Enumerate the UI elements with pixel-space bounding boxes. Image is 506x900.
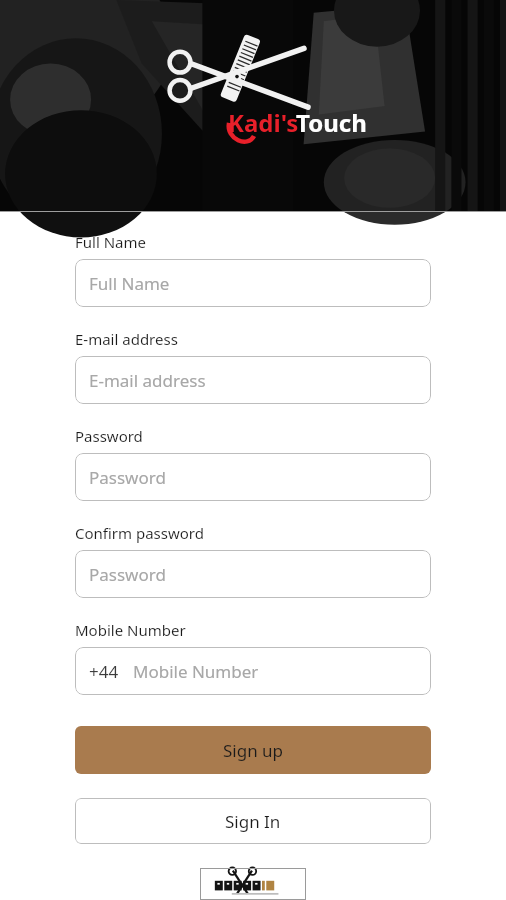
staticText: Kadi's <box>228 106 299 139</box>
staticText: Mobile Number <box>133 660 259 683</box>
button[interactable]: Barbria Elegance <box>200 868 306 900</box>
staticText: Password <box>89 563 166 586</box>
staticText: E-mail address <box>75 329 178 349</box>
staticText: Password <box>75 426 143 446</box>
staticText: E-mail address <box>89 369 206 392</box>
button[interactable]: Sign In <box>75 798 431 844</box>
button[interactable]: Password <box>75 550 431 598</box>
button[interactable]: Full Name <box>75 259 431 307</box>
button[interactable]: Password <box>75 453 431 501</box>
staticText: +44 <box>89 660 119 683</box>
staticText: Full Name <box>89 272 170 295</box>
staticText: Sign up <box>223 739 284 762</box>
button[interactable]: Sign up <box>75 726 431 774</box>
button[interactable]: E-mail address <box>75 356 431 404</box>
staticText: Touch <box>296 106 367 139</box>
staticText: Full Name <box>75 232 146 252</box>
button[interactable]: +44 <box>75 647 431 695</box>
staticText: Sign In <box>225 810 281 833</box>
staticText: Confirm password <box>75 523 204 543</box>
staticText: Mobile Number <box>75 620 186 640</box>
staticText: Password <box>89 466 166 489</box>
